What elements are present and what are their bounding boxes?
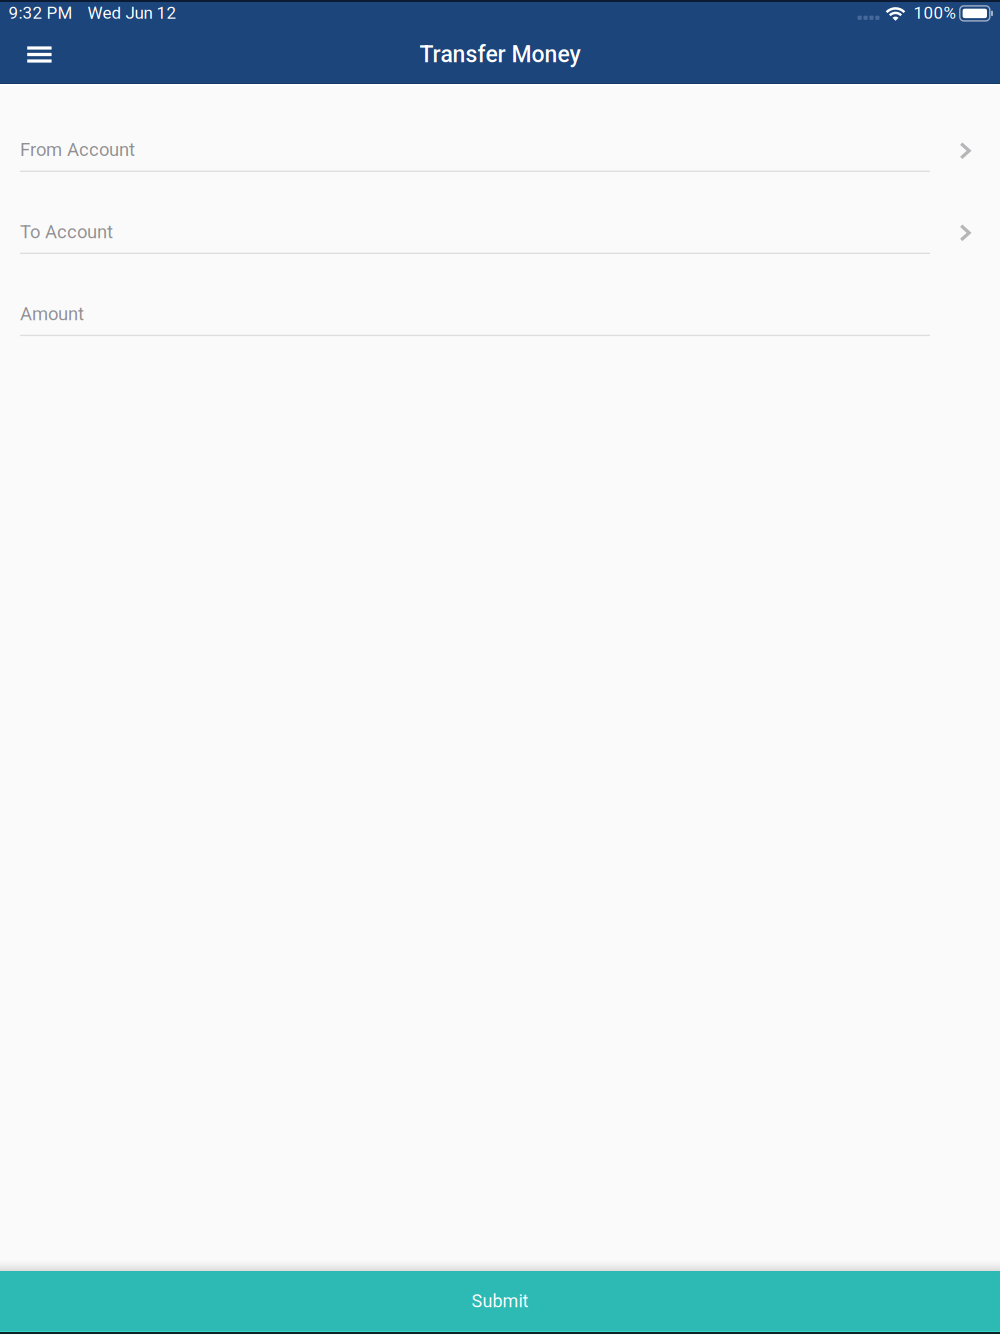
button[interactable]: Submit bbox=[0, 1271, 1000, 1331]
staticText: Wed Jun 12 bbox=[87, 3, 176, 23]
staticText: To Account bbox=[20, 221, 113, 243]
staticText: From Account bbox=[20, 139, 135, 161]
button[interactable]: Select From Account bbox=[20, 139, 971, 172]
button[interactable]: Menu bbox=[0, 25, 79, 83]
staticText: 9:32 PM bbox=[8, 3, 72, 23]
button[interactable]: Select To Account bbox=[20, 221, 971, 254]
staticText: Amount bbox=[20, 303, 84, 325]
staticText: Submit bbox=[471, 1290, 528, 1312]
staticText: Transfer Money bbox=[419, 41, 580, 68]
staticText: 100% bbox=[913, 3, 955, 23]
